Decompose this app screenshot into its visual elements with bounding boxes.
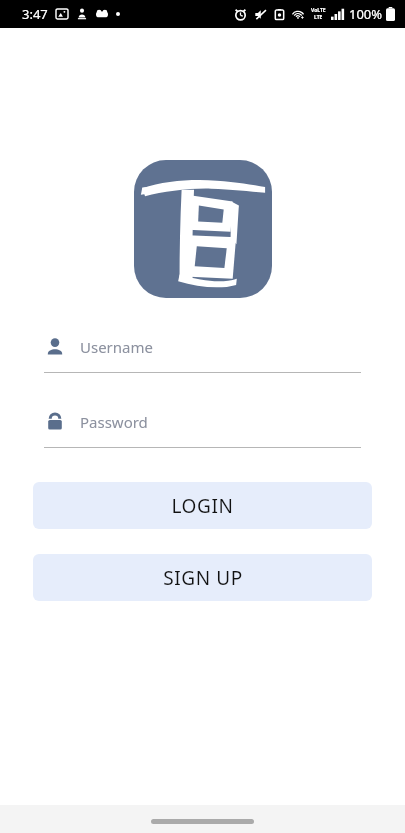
button[interactable]: SIGN UP xyxy=(33,554,372,601)
staticText: Password xyxy=(80,412,148,432)
button[interactable]: Password xyxy=(44,411,361,448)
staticText: LTE xyxy=(314,14,323,21)
button[interactable]: Username xyxy=(44,336,361,373)
staticText: LOGIN xyxy=(171,493,234,519)
staticText: VoLTE xyxy=(311,7,326,14)
staticText: 100% xyxy=(349,5,383,23)
staticText: Username xyxy=(80,337,153,357)
button[interactable]: Home xyxy=(151,819,254,824)
button[interactable]: LOGIN xyxy=(33,482,372,529)
staticText: SIGN UP xyxy=(163,565,243,591)
staticText: 3:47 xyxy=(22,5,48,23)
